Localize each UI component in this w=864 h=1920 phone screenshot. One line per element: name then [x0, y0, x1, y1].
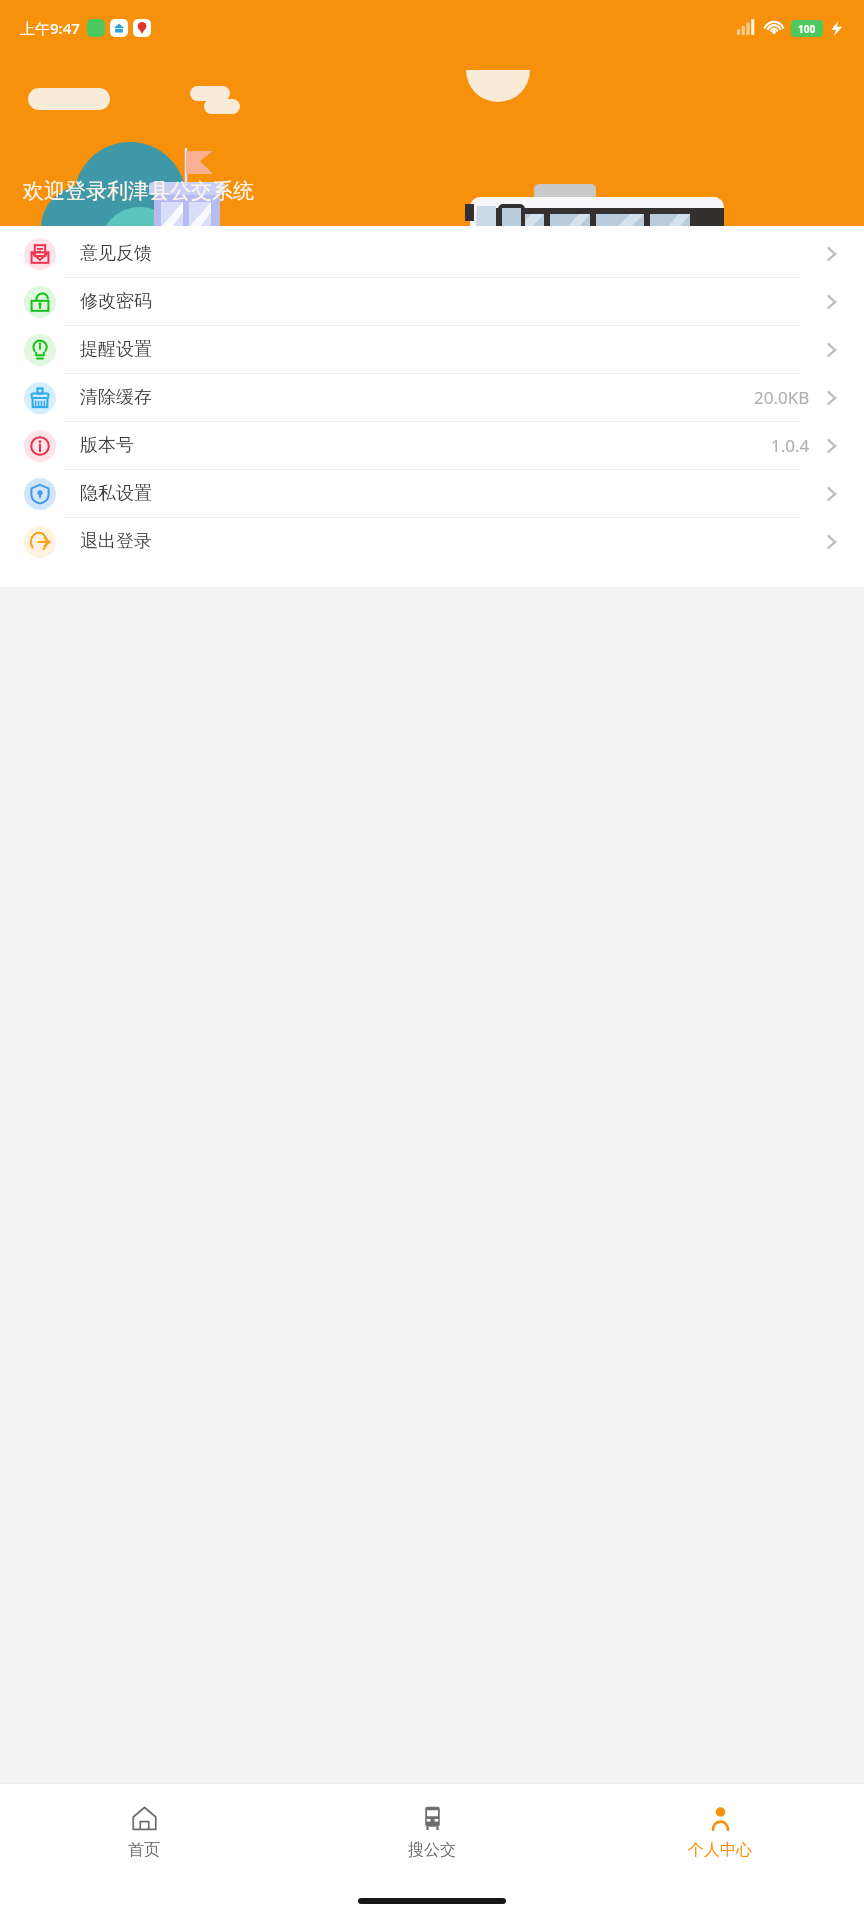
button[interactable]: 首页	[0, 1784, 288, 1882]
staticText: 20.0KB	[754, 386, 810, 409]
button[interactable]: 意见反馈	[0, 230, 864, 277]
staticText: 个人中心	[688, 1840, 752, 1860]
staticText: 隐私设置	[80, 482, 152, 505]
staticText: 搜公交	[408, 1840, 456, 1860]
button[interactable]: 隐私设置	[0, 470, 864, 517]
button[interactable]: 搜公交	[288, 1784, 576, 1882]
button[interactable]: 版本号	[0, 422, 864, 469]
staticText: 1.0.4	[771, 434, 810, 457]
button[interactable]: 修改密码	[0, 278, 864, 325]
button[interactable]: 个人中心	[576, 1784, 864, 1882]
staticText: 修改密码	[80, 290, 152, 313]
button[interactable]: 提醒设置	[0, 326, 864, 373]
staticText: 退出登录	[80, 530, 152, 553]
staticText: 上午9:47	[20, 18, 80, 38]
staticText: 欢迎登录利津县公交系统	[23, 178, 254, 204]
button[interactable]: 清除缓存	[0, 374, 864, 421]
staticText: 版本号	[80, 434, 134, 457]
staticText: 首页	[128, 1840, 160, 1860]
staticText: 清除缓存	[80, 386, 152, 409]
staticText: 意见反馈	[80, 242, 152, 265]
staticText: 100	[798, 22, 816, 36]
staticText: 提醒设置	[80, 338, 152, 361]
button[interactable]: 退出登录	[0, 518, 864, 565]
